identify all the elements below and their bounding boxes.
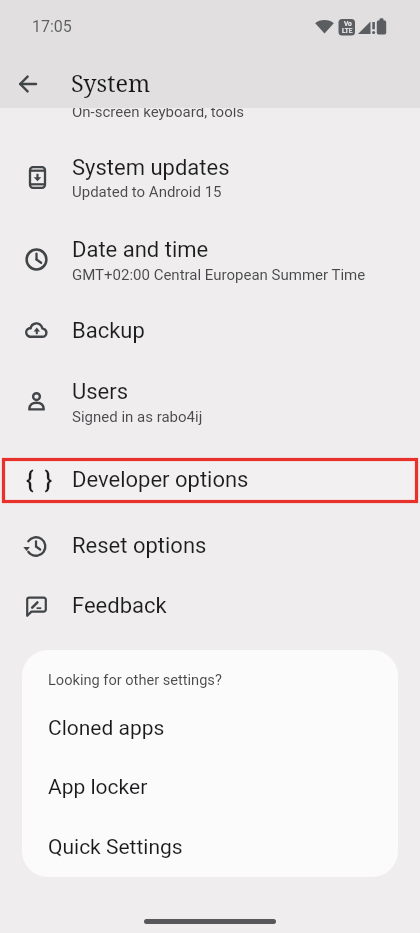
- staticText: App locker: [48, 775, 148, 800]
- staticText: Backup: [72, 318, 145, 344]
- staticText: Looking for other settings?: [48, 671, 222, 688]
- staticText: Feedback: [72, 593, 167, 619]
- staticText: Cloned apps: [48, 716, 165, 741]
- staticText: On-screen keyboard, tools: [72, 103, 245, 121]
- button[interactable]: [22, 817, 398, 875]
- button[interactable]: [22, 699, 398, 757]
- staticText: LTE: [342, 27, 353, 35]
- button[interactable]: [0, 578, 420, 634]
- staticText: { }: [26, 467, 56, 494]
- button[interactable]: [0, 223, 420, 295]
- staticText: Vo: [344, 20, 352, 27]
- button[interactable]: [8, 64, 48, 104]
- staticText: 17:05: [32, 17, 72, 36]
- staticText: Updated to Android 15: [72, 183, 222, 201]
- staticText: Users: [72, 379, 129, 405]
- staticText: Developer options: [72, 467, 249, 493]
- button[interactable]: [22, 758, 398, 816]
- button[interactable]: [0, 518, 420, 574]
- button[interactable]: [2, 458, 418, 503]
- staticText: Date and time: [72, 237, 209, 263]
- staticText: Signed in as rabo4ij: [72, 408, 203, 426]
- staticText: Reset options: [72, 533, 207, 559]
- button[interactable]: [0, 141, 420, 213]
- button[interactable]: [0, 305, 420, 361]
- button[interactable]: [0, 365, 420, 439]
- staticText: GMT+02:00 Central European Summer Time: [72, 266, 366, 284]
- staticText: Quick Settings: [48, 835, 183, 860]
- staticText: System: [71, 67, 151, 99]
- staticText: System updates: [72, 155, 230, 181]
